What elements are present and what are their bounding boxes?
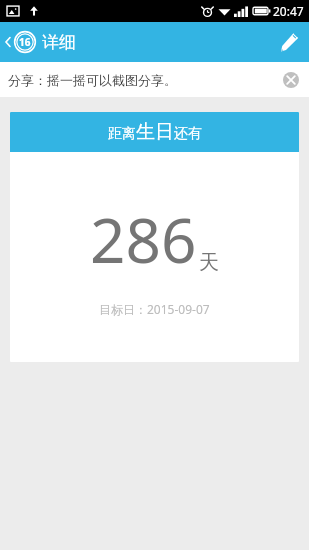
staticText: 详细 — [42, 32, 76, 53]
staticText: 16 — [19, 35, 31, 49]
button[interactable]: Close — [281, 70, 301, 90]
button[interactable]: Edit — [269, 22, 309, 62]
staticText: 目标日：2015-09-07 — [99, 301, 210, 317]
staticText: 分享：摇一摇可以截图分享。 — [8, 72, 177, 88]
button[interactable]: 距离生日还有 — [10, 112, 299, 362]
staticText: 天 — [199, 250, 219, 275]
button[interactable]: 16 — [0, 27, 84, 57]
staticText: 286 — [90, 197, 197, 281]
staticText: 20:47 — [273, 3, 304, 19]
staticText: 距离生日还有 — [108, 120, 202, 144]
